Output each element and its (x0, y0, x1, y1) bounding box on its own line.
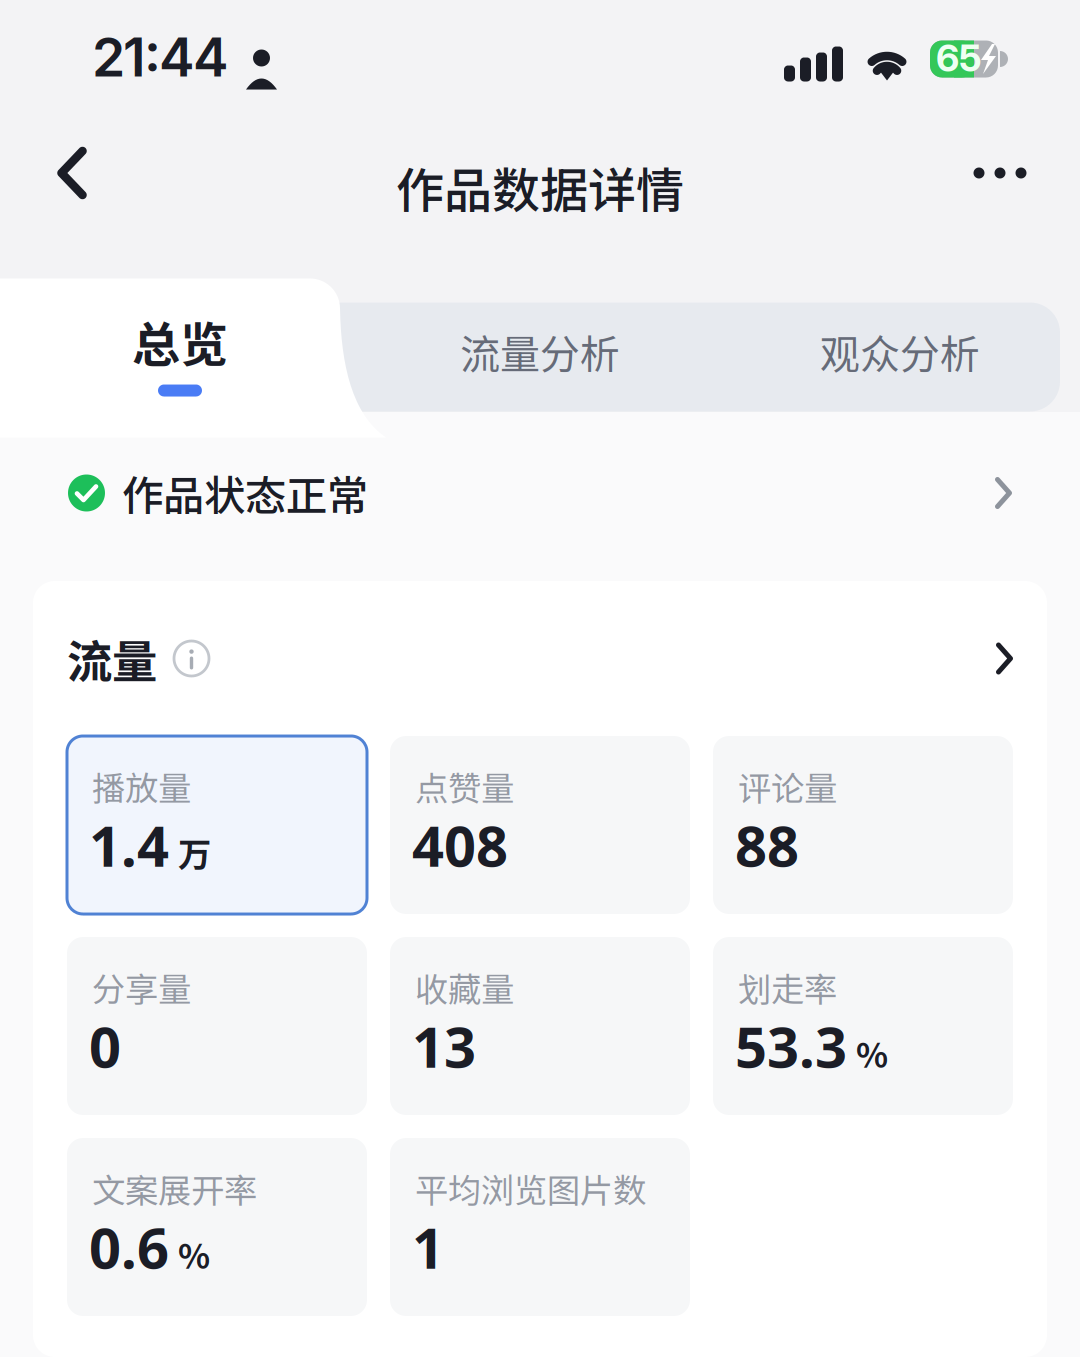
button[interactable]: 流量 (33, 581, 1047, 736)
staticText: 13 (412, 1008, 476, 1084)
staticText: 作品数据详情 (396, 152, 684, 222)
staticText: 划走率 (738, 963, 837, 1011)
staticText: 1 (412, 1209, 444, 1285)
button[interactable]: 收藏量 (390, 937, 690, 1115)
staticText: 平均浏览图片数 (415, 1164, 646, 1212)
staticText: 点赞量 (415, 762, 514, 810)
staticText: 评论量 (738, 762, 837, 810)
staticText: 65 (936, 35, 982, 81)
staticText: 0.6 (89, 1209, 169, 1285)
staticText: 总览 (132, 306, 228, 376)
staticText: 万 (178, 828, 211, 876)
button[interactable]: 总览 (0, 278, 360, 436)
button[interactable]: 播放量 (67, 736, 367, 914)
button[interactable]: 作品状态正常 (0, 437, 1080, 581)
staticText: 53.3 (735, 1008, 847, 1084)
staticText: 收藏量 (415, 963, 514, 1011)
staticText: 1.4 (89, 807, 169, 883)
button[interactable]: More options (952, 125, 1048, 221)
button[interactable]: 划走率 (713, 937, 1013, 1115)
staticText: 作品状态正常 (122, 463, 368, 523)
staticText: 0 (89, 1008, 121, 1084)
staticText: 21:44 (92, 25, 229, 89)
staticText: 播放量 (92, 762, 191, 810)
staticText: % (178, 1230, 210, 1278)
staticText: % (856, 1029, 888, 1077)
staticText: 流量分析 (460, 322, 620, 380)
button[interactable]: 分享量 (67, 937, 367, 1115)
button[interactable]: 平均浏览图片数 (390, 1138, 690, 1316)
staticText: 408 (412, 807, 508, 883)
button[interactable]: Back (24, 125, 120, 221)
staticText: 流量 (67, 626, 157, 691)
button[interactable]: 评论量 (713, 736, 1013, 914)
button[interactable]: 文案展开率 (67, 1138, 367, 1316)
button[interactable]: 流量分析 (360, 278, 720, 436)
staticText: 88 (735, 807, 799, 883)
staticText: 分享量 (92, 963, 191, 1011)
staticText: 观众分析 (820, 322, 980, 380)
staticText: 文案展开率 (92, 1164, 257, 1212)
button[interactable]: 点赞量 (390, 736, 690, 914)
button[interactable]: 观众分析 (720, 278, 1080, 436)
